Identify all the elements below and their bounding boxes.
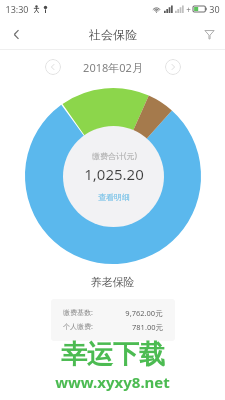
staticText: 查看明细 [98, 192, 130, 202]
button[interactable]: Next month [165, 59, 181, 75]
staticText: 13:30 [5, 3, 29, 15]
staticText: 缴费基数: [63, 308, 93, 318]
staticText: 9,762.00元 [125, 308, 163, 318]
staticText: 个人缴费: [63, 322, 93, 332]
staticText: + [186, 4, 191, 15]
button[interactable]: Filter [193, 18, 225, 50]
staticText: 养老保险 [0, 275, 225, 289]
staticText: 1,025.20 [84, 164, 144, 184]
staticText: 30 [209, 3, 220, 15]
button[interactable]: 查看明细 [95, 191, 133, 203]
staticText: 社会保险 [89, 27, 137, 42]
staticText: www.xyxy8.net [55, 372, 170, 392]
staticText: 幸运下载 [61, 338, 165, 371]
button[interactable]: Previous month [45, 59, 61, 75]
button[interactable]: 缴费基数: [51, 299, 175, 341]
button[interactable]: Back [0, 18, 32, 50]
staticText: 2018年02月 [83, 60, 143, 75]
staticText: 缴费合计(元) [92, 150, 137, 161]
staticText: 781.00元 [132, 322, 163, 332]
